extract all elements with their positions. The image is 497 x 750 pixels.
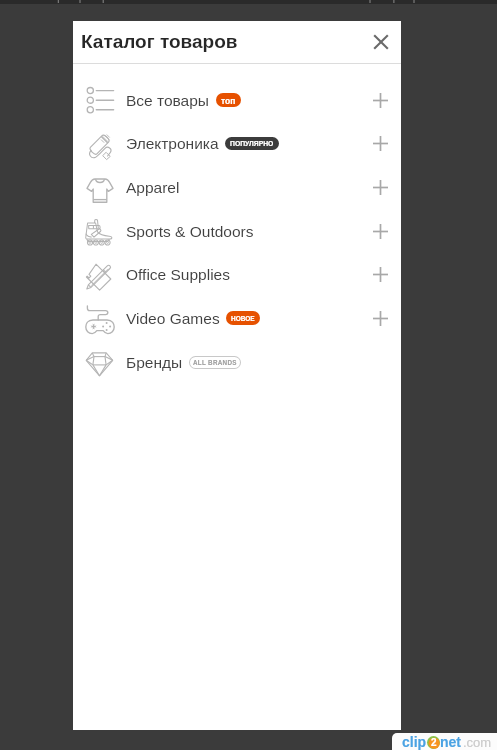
staticText: Office Supplies [126,266,230,283]
staticText: Электроника [126,135,219,152]
staticText: ПОПУЛЯРНО [230,140,274,148]
staticText: НОВОЕ [231,315,255,322]
staticText: Все товары [126,92,210,109]
button[interactable]: Expand Video Games [364,302,396,334]
staticText: Каталог товаров [81,31,238,52]
button[interactable]: Office Supplies [73,252,401,296]
button[interactable]: Sports & Outdoors [73,209,401,253]
button[interactable]: Apparel [73,165,401,209]
button[interactable]: Expand Sports & Outdoors [364,215,396,247]
staticText: Sports & Outdoors [126,223,254,240]
staticText: 2 [431,737,437,748]
staticText: Apparel [126,179,180,196]
button[interactable]: Expand Office Supplies [364,258,396,290]
button[interactable]: Expand Все товары [364,84,396,116]
staticText: Video Games [126,310,220,327]
button[interactable]: Expand Электроника [364,127,396,159]
button[interactable]: Все товары [73,78,401,122]
staticText: .com [463,735,492,750]
button[interactable]: Бренды [73,340,401,384]
button[interactable]: Expand Apparel [364,171,396,203]
button[interactable]: Электроника [73,121,401,165]
staticText: net [440,734,461,750]
staticText: ALL BRANDS [193,359,237,366]
button[interactable]: Video Games [73,296,401,340]
staticText: Бренды [126,354,183,371]
button[interactable]: Close [364,25,398,59]
staticText: топ [221,96,236,105]
staticText: clip [402,734,427,750]
